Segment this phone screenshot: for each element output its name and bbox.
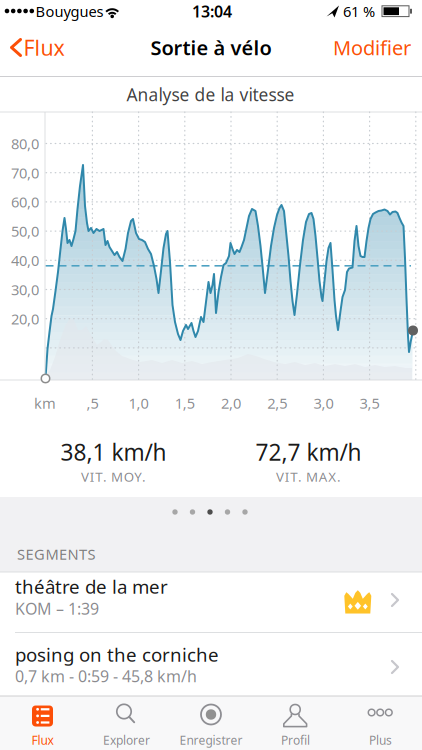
staticText: théâtre de la mer [15,574,168,599]
staticText: 72,7 km/h [255,437,361,467]
staticText: Flux [23,33,64,62]
staticText: Enregistrer [179,732,242,748]
staticText: 61 % [343,2,375,21]
staticText: 30,0 [11,280,39,299]
staticText: km [34,393,56,413]
staticText: Analyse de la vitesse [126,83,294,106]
staticText: 80,0 [11,134,39,153]
staticText: VIT. MOY. [81,468,146,485]
staticText: VIT. MAX. [276,468,341,485]
staticText: Plus [369,732,392,748]
staticText: SEGMENTS [17,544,95,564]
staticText: ,5 [86,393,98,413]
staticText: 3,0 [313,393,333,413]
staticText: 13:04 [192,1,232,22]
staticText: Modifier [333,34,411,61]
staticText: 2,0 [221,393,241,413]
staticText: 70,0 [11,163,39,182]
staticText: 1,0 [129,393,149,413]
staticText: 38,1 km/h [60,437,166,467]
staticText: Explorer [103,732,150,748]
staticText: KOM – 1:39 [15,598,99,619]
staticText: 3,5 [360,393,380,413]
staticText: Bouygues [35,2,103,21]
staticText: posing on the corniche [15,642,219,667]
staticText: 60,0 [11,192,39,212]
staticText: 40,0 [11,251,39,270]
staticText: Sortie à vélo [150,34,271,61]
staticText: 0,7 km - 0:59 - 45,8 km/h [15,665,197,687]
staticText: 2,5 [267,393,287,413]
staticText: Flux [31,732,53,748]
staticText: 1,5 [175,393,195,413]
staticText: 20,0 [11,309,39,328]
staticText: Profil [281,732,310,748]
staticText: 50,0 [11,221,39,241]
